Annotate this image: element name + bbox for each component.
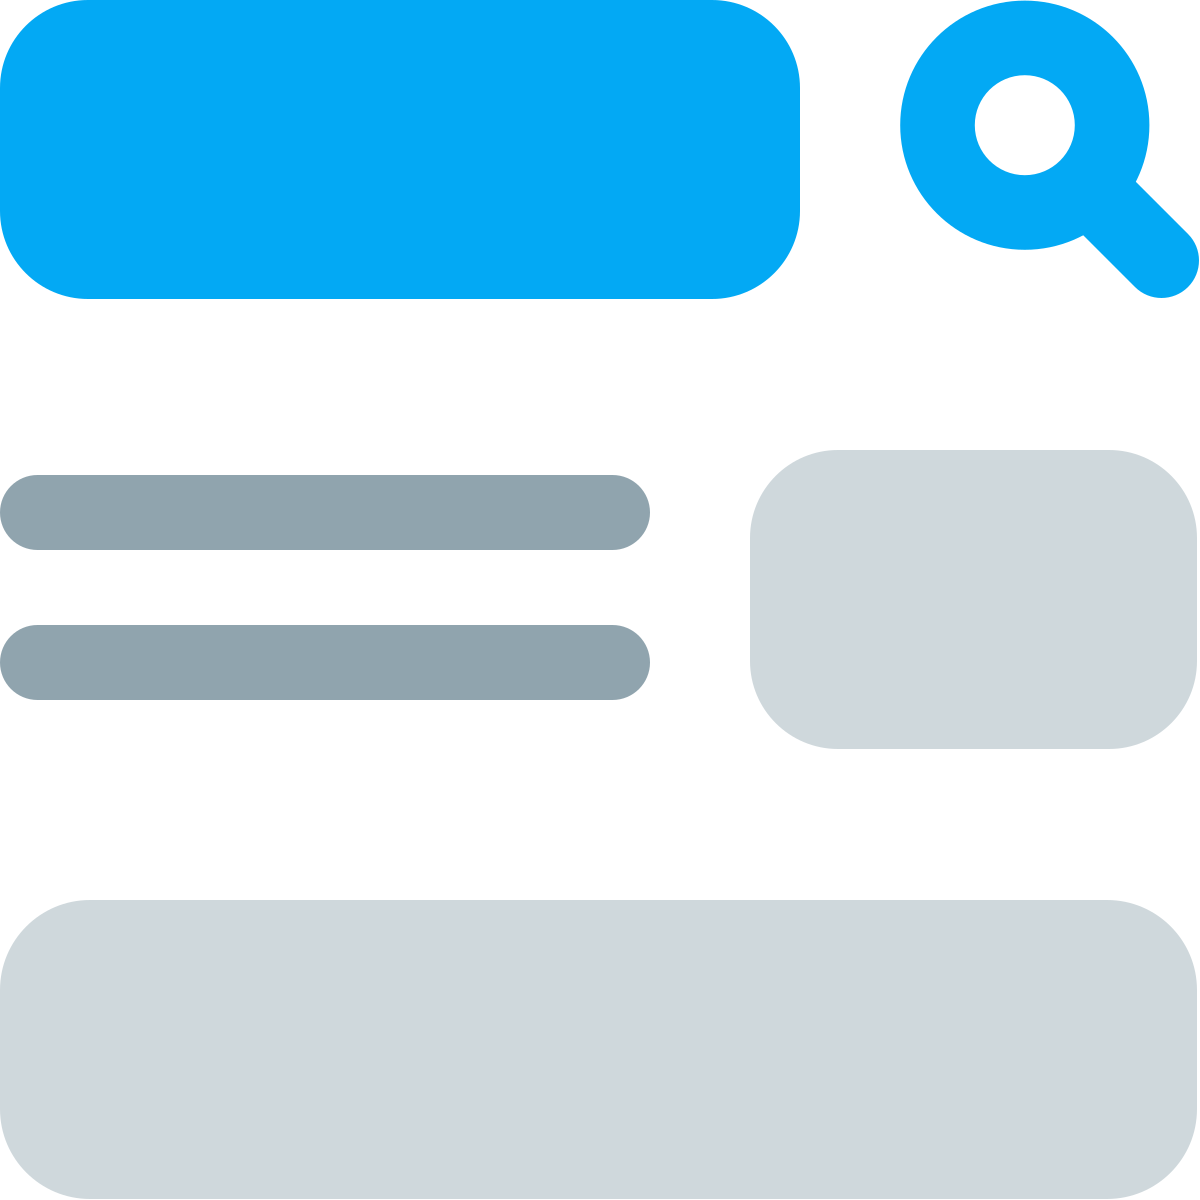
button[interactable]: Next story	[0, 900, 1197, 1199]
button[interactable]: Featured story	[0, 0, 800, 299]
button[interactable]: Top story	[0, 450, 1197, 749]
button[interactable]: Search	[900, 1, 1199, 298]
